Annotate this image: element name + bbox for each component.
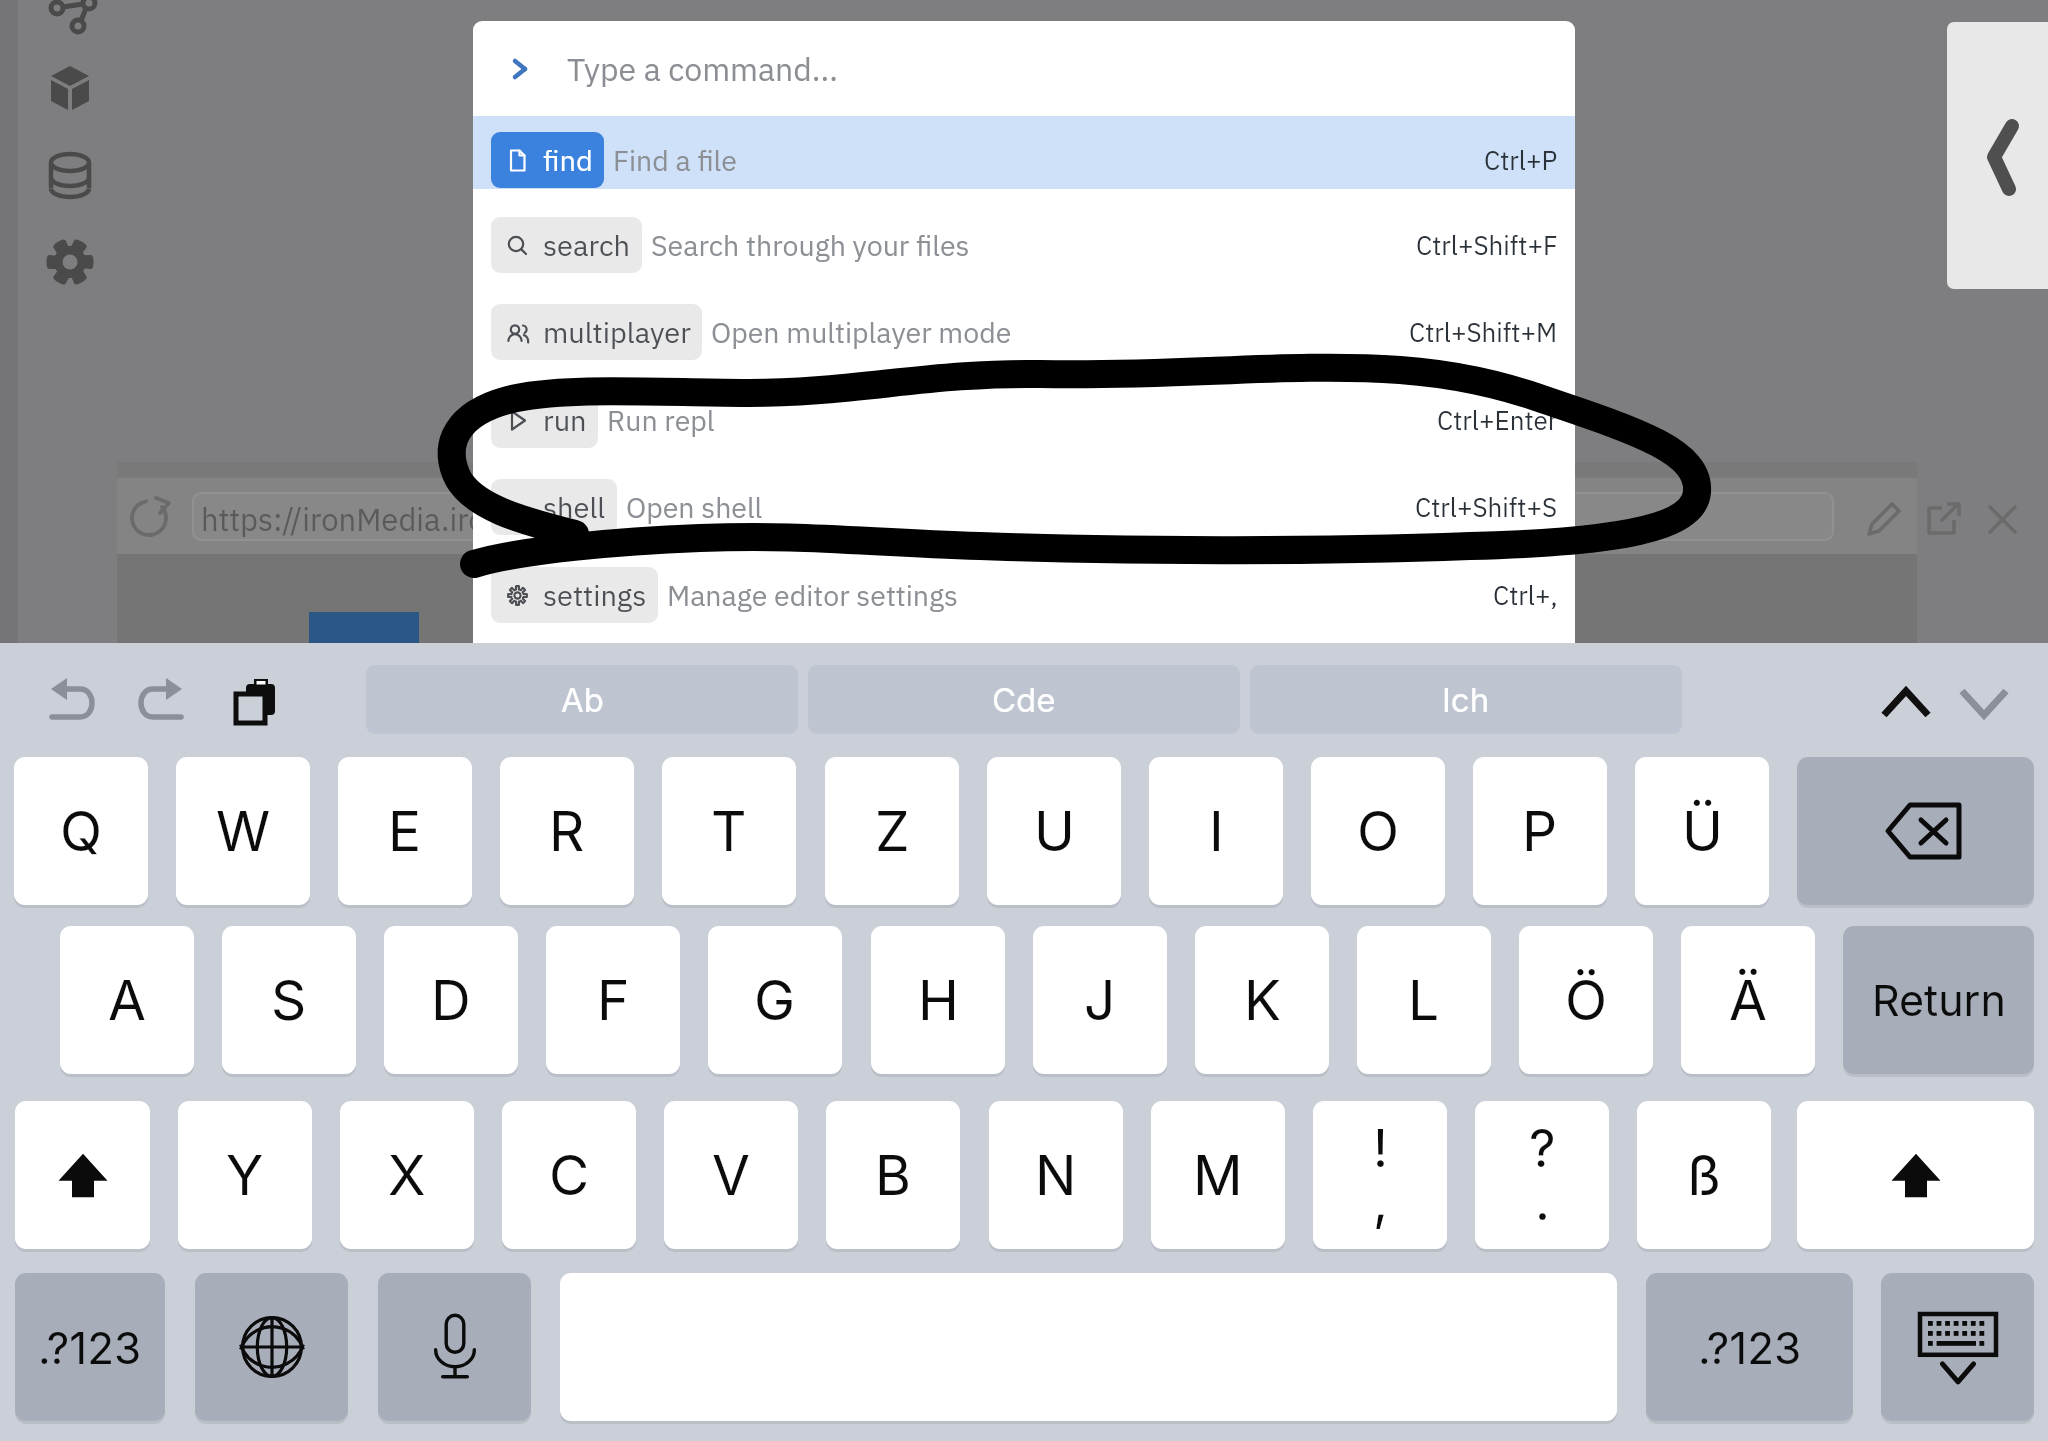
button[interactable]: M — [1151, 1101, 1285, 1249]
button[interactable]: .?123 — [15, 1273, 165, 1421]
button[interactable]: Ö — [1519, 926, 1653, 1074]
button[interactable]: L — [1357, 926, 1491, 1074]
button[interactable]: J — [1033, 926, 1167, 1074]
button[interactable]: settings — [473, 551, 1575, 638]
button[interactable]: F — [546, 926, 680, 1074]
button[interactable]: Redo — [132, 665, 194, 723]
button[interactable]: B — [826, 1101, 960, 1249]
button[interactable]: Reload — [128, 495, 180, 547]
button[interactable]: X — [340, 1101, 474, 1249]
button[interactable]: Back — [1947, 22, 2048, 289]
staticText: Cde — [992, 680, 1056, 720]
staticText: D — [431, 967, 471, 1034]
staticText: Search through your files — [651, 227, 970, 264]
staticText: Ö — [1565, 967, 1608, 1034]
button[interactable]: Switch keyboard language — [195, 1273, 348, 1421]
staticText: https://ironMedia.ironb — [201, 499, 522, 539]
button[interactable]: ß — [1637, 1101, 1771, 1249]
staticText: run — [543, 401, 587, 439]
button[interactable]: I — [1149, 757, 1283, 905]
button[interactable]: N — [989, 1101, 1123, 1249]
button[interactable]: Settings — [36, 234, 104, 302]
button[interactable]: D — [384, 926, 518, 1074]
button[interactable]: ? — [1475, 1101, 1609, 1249]
staticText: S — [271, 967, 307, 1034]
staticText: F — [597, 967, 630, 1034]
staticText: Q — [60, 798, 103, 865]
button[interactable]: Ab — [366, 665, 798, 734]
button[interactable]: R — [500, 757, 634, 905]
button[interactable]: Edit — [1860, 496, 1910, 546]
button[interactable]: K — [1195, 926, 1329, 1074]
button[interactable]: Address bar — [193, 492, 1833, 542]
button[interactable]: O — [1311, 757, 1445, 905]
button[interactable]: Undo — [40, 665, 102, 723]
staticText: U — [1034, 798, 1075, 865]
staticText: Ü — [1682, 798, 1723, 865]
staticText: Type a command... — [567, 48, 838, 90]
button[interactable]: ! — [1313, 1101, 1447, 1249]
button[interactable]: Packages — [36, 56, 104, 124]
staticText: O — [1357, 798, 1400, 865]
button[interactable]: Previous field — [1874, 671, 1938, 721]
button[interactable]: W — [176, 757, 310, 905]
button[interactable]: Next field — [1952, 671, 2016, 721]
button[interactable]: U — [987, 757, 1121, 905]
button[interactable]: Ich — [1250, 665, 1682, 734]
staticText: Ctrl+Shift+M — [1409, 315, 1558, 349]
button[interactable]: Ü — [1635, 757, 1769, 905]
button[interactable]: Backspace — [1797, 757, 2034, 905]
button[interactable]: A — [60, 926, 194, 1074]
staticText: A — [108, 967, 146, 1034]
staticText: R — [549, 798, 585, 865]
staticText: Manage editor settings — [667, 577, 958, 614]
button[interactable]: V — [664, 1101, 798, 1249]
button[interactable]: Paste — [224, 665, 286, 723]
button[interactable]: .?123 — [1646, 1273, 1853, 1421]
button[interactable]: S — [222, 926, 356, 1074]
staticText: X — [388, 1142, 426, 1209]
button[interactable]: C — [502, 1101, 636, 1249]
staticText: I — [1209, 798, 1224, 865]
staticText: Ich — [1442, 680, 1490, 720]
button[interactable]: T — [662, 757, 796, 905]
button[interactable]: Open in new tab — [1918, 496, 1968, 546]
staticText: L — [1408, 967, 1440, 1034]
staticText: , — [1373, 1170, 1388, 1233]
button[interactable]: Ä — [1681, 926, 1815, 1074]
staticText: H — [918, 967, 959, 1034]
staticText: G — [754, 967, 796, 1034]
button[interactable]: G — [708, 926, 842, 1074]
button[interactable]: Z — [825, 757, 959, 905]
button[interactable]: Shift — [15, 1101, 150, 1249]
button[interactable]: Type a command... — [473, 21, 1575, 116]
button[interactable]: P — [1473, 757, 1607, 905]
staticText: .?123 — [1698, 1321, 1802, 1374]
button[interactable]: H — [871, 926, 1005, 1074]
staticText: C — [549, 1142, 590, 1209]
button[interactable]: Database — [36, 146, 104, 214]
button[interactable]: Hide keyboard — [1881, 1273, 2034, 1421]
button[interactable]: search — [473, 201, 1575, 288]
staticText: T — [711, 798, 747, 865]
staticText: P — [1522, 798, 1558, 865]
staticText: Return — [1872, 974, 2006, 1026]
button[interactable]: shell — [473, 463, 1575, 550]
button[interactable]: Close — [1980, 496, 2030, 546]
staticText: Ctrl+Enter — [1437, 403, 1558, 437]
staticText: find — [543, 141, 593, 179]
button[interactable]: find — [473, 116, 1575, 203]
button[interactable]: Version control — [36, 0, 104, 58]
staticText: Ctrl+Shift+F — [1416, 228, 1558, 262]
staticText: J — [1084, 967, 1116, 1034]
button[interactable]: Return — [1843, 926, 2034, 1074]
button[interactable]: Cde — [808, 665, 1240, 734]
button[interactable]: run — [473, 376, 1575, 463]
button[interactable]: Q — [14, 757, 148, 905]
button[interactable]: Y — [178, 1101, 312, 1249]
button[interactable]: E — [338, 757, 472, 905]
button[interactable]: Dictate — [378, 1273, 531, 1421]
button[interactable]: multiplayer — [473, 288, 1575, 375]
button[interactable]: Shift — [1797, 1101, 2034, 1249]
